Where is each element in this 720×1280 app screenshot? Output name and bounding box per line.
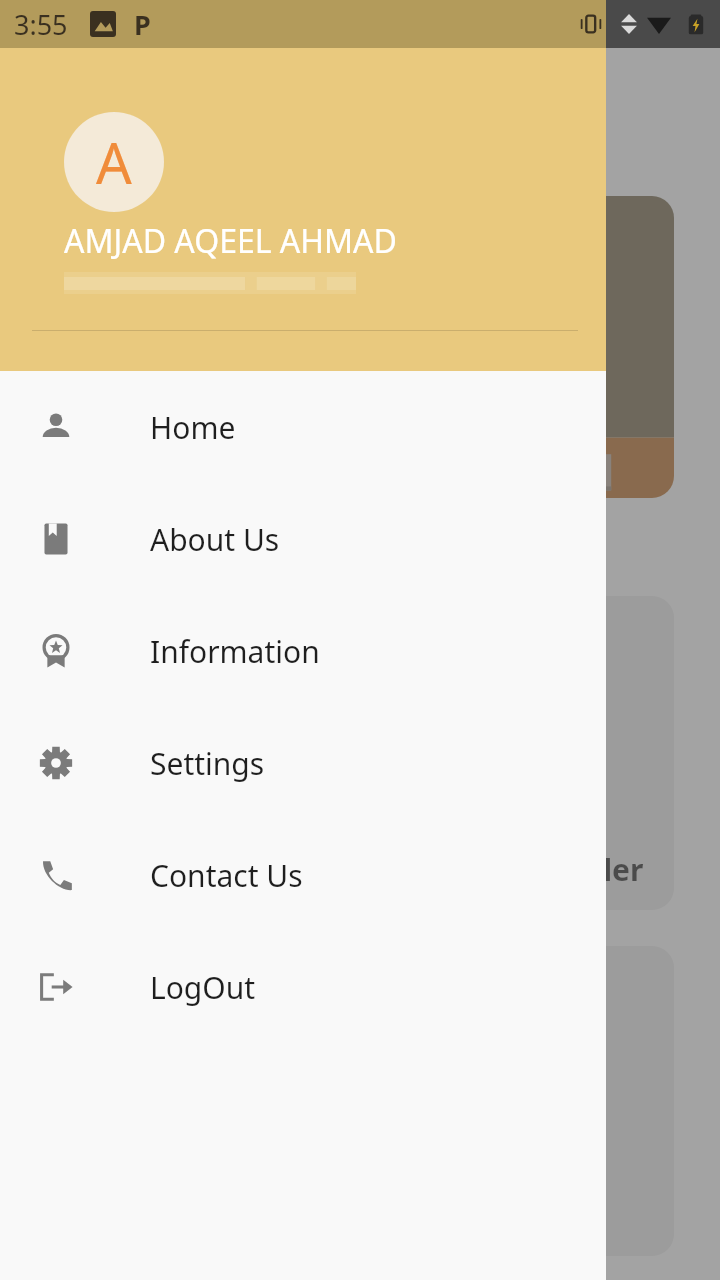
other: Settings <box>38 745 74 781</box>
staticText: Information <box>150 631 320 672</box>
button[interactable]: Information <box>0 595 606 707</box>
button[interactable]: Settings <box>0 707 606 819</box>
staticText: Contact Us <box>150 855 303 896</box>
staticText: AMJAD AQEEL AHMAD <box>64 219 397 263</box>
staticText: 3:55 <box>14 6 68 43</box>
other: Contact Us <box>38 857 74 893</box>
button[interactable]: About Us <box>0 483 606 595</box>
staticText: About Us <box>150 519 280 560</box>
other: Home <box>38 409 74 445</box>
button[interactable]: Home <box>0 371 606 483</box>
staticText: Home <box>150 407 236 448</box>
staticText: Settings <box>150 743 265 784</box>
button[interactable] <box>46 946 674 1256</box>
other: LogOut <box>38 969 74 1005</box>
staticText: LogOut <box>150 967 256 1008</box>
other: About Us <box>38 521 74 557</box>
staticText: P <box>134 6 151 43</box>
staticText: A <box>96 124 132 200</box>
staticText: Wholesaler <box>476 849 644 890</box>
button[interactable] <box>46 196 674 498</box>
button[interactable]: Wholesaler <box>46 596 674 910</box>
other: Information <box>38 633 74 669</box>
button[interactable]: Contact Us <box>0 819 606 931</box>
button[interactable]: LogOut <box>0 931 606 1043</box>
